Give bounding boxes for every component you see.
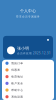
staticText: 会员有效期 2025.12.31	[17, 51, 51, 55]
button[interactable]: 账户安全	[2, 80, 54, 87]
staticText: 账户安全	[11, 82, 23, 85]
staticText: 系统设置	[11, 95, 23, 98]
staticText: 优惠券	[11, 68, 20, 72]
staticText: 尊享会员专属服务	[16, 15, 40, 18]
button[interactable]: 系统设置	[2, 93, 54, 100]
staticText: 张小明	[17, 46, 29, 51]
button[interactable]: 优惠券	[2, 67, 54, 73]
staticText: 个人中心	[20, 8, 36, 13]
staticText: 帮助中心	[11, 88, 23, 92]
staticText: 我的订单	[11, 62, 23, 65]
button[interactable]: 帮助中心	[2, 87, 54, 93]
staticText: 收货地址	[11, 75, 23, 78]
button[interactable]: 我的订单	[2, 60, 54, 67]
button[interactable]: 收货地址	[2, 73, 54, 80]
